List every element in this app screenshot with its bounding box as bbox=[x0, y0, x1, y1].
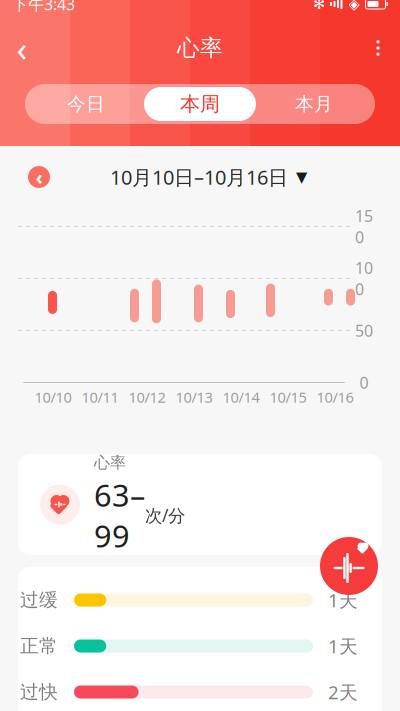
staticText: 10/12 bbox=[128, 387, 165, 407]
button[interactable]: 本周 bbox=[144, 87, 256, 121]
staticText: 63–99 bbox=[94, 475, 145, 556]
button[interactable]: 今日 bbox=[28, 87, 144, 121]
staticText: 10月10日–10月16日 bbox=[110, 164, 288, 190]
staticText: 1天 bbox=[328, 588, 358, 612]
staticText: ◈ bbox=[348, 0, 359, 12]
staticText: 心率 bbox=[94, 453, 126, 473]
staticText: ▼ bbox=[296, 169, 307, 185]
staticText: 50 bbox=[355, 320, 373, 341]
staticText: 100 bbox=[355, 257, 373, 300]
staticText: ‹ bbox=[35, 164, 42, 190]
staticText: 过快 bbox=[20, 680, 58, 703]
staticText: 本周 bbox=[180, 92, 220, 116]
staticText: 2天 bbox=[328, 680, 358, 704]
staticText: 10/16 bbox=[316, 387, 353, 407]
staticText: 本月 bbox=[295, 92, 333, 115]
button[interactable]: 10月10日–10月16日 bbox=[110, 164, 307, 190]
staticText: 10/13 bbox=[175, 387, 212, 407]
button[interactable]: 更多选项 bbox=[356, 28, 400, 68]
staticText: 今日 bbox=[67, 92, 105, 115]
staticText: ✻ bbox=[313, 0, 325, 12]
staticText: 过缓 bbox=[20, 588, 58, 611]
staticText: 10/14 bbox=[222, 387, 259, 407]
staticText: 10/15 bbox=[269, 387, 306, 407]
staticText: 0 bbox=[359, 372, 368, 393]
button[interactable]: 返回 bbox=[0, 28, 44, 68]
button[interactable]: 测量心率 bbox=[320, 537, 378, 595]
staticText: 10/11 bbox=[81, 387, 118, 407]
button[interactable]: 上一周 bbox=[28, 166, 50, 188]
staticText: 心率 bbox=[177, 34, 223, 62]
staticText: 10/10 bbox=[34, 387, 71, 407]
staticText: ‹ bbox=[16, 25, 27, 71]
staticText: 下午3:43 bbox=[12, 0, 75, 15]
staticText: 次/分 bbox=[145, 504, 185, 527]
staticText: 1天 bbox=[328, 634, 358, 658]
staticText: 150 bbox=[355, 205, 373, 248]
staticText: 正常 bbox=[20, 634, 58, 657]
button[interactable]: 本月 bbox=[256, 87, 372, 121]
